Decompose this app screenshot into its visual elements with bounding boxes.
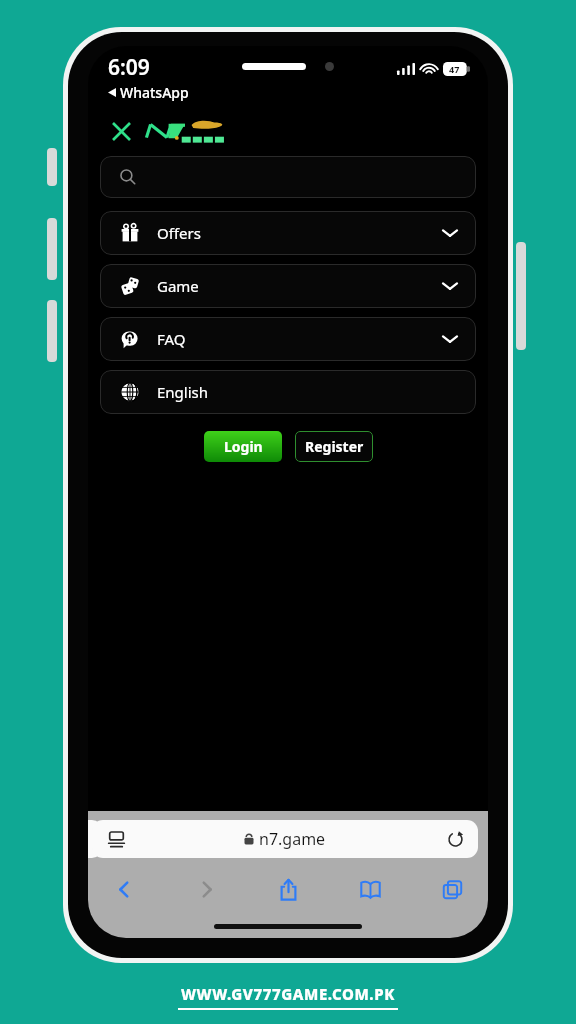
staticText: WhatsApp [120, 83, 189, 102]
button[interactable]: Page settings [105, 828, 127, 850]
button[interactable]: Game [100, 264, 476, 308]
button[interactable] [144, 116, 226, 146]
button[interactable]: Forward [184, 872, 228, 906]
button[interactable]: Share [266, 872, 310, 906]
staticText: 6:09 [108, 53, 150, 82]
button[interactable]: Reload [443, 827, 467, 851]
staticText: Game [157, 276, 199, 296]
button[interactable]: Close [106, 116, 136, 146]
button[interactable] [100, 156, 476, 198]
button[interactable]: Back [102, 872, 146, 906]
staticText: n7.game [259, 828, 326, 850]
staticText: English [157, 382, 209, 402]
staticText: 47 [449, 63, 460, 75]
button[interactable]: Login [204, 431, 282, 462]
button[interactable]: Bookmarks [348, 872, 392, 906]
button[interactable]: Page settings [92, 820, 478, 858]
staticText: FAQ [157, 329, 186, 349]
button[interactable]: English [100, 370, 476, 414]
button[interactable]: Offers [100, 211, 476, 255]
staticText: Login [224, 437, 263, 456]
button[interactable]: Register [295, 431, 373, 462]
staticText: Offers [157, 223, 201, 243]
staticText: Register [305, 437, 364, 456]
staticText: WWW.GV777GAME.COM.PK [181, 984, 395, 1004]
button[interactable]: FAQ [100, 317, 476, 361]
button[interactable]: Tabs [430, 872, 474, 906]
